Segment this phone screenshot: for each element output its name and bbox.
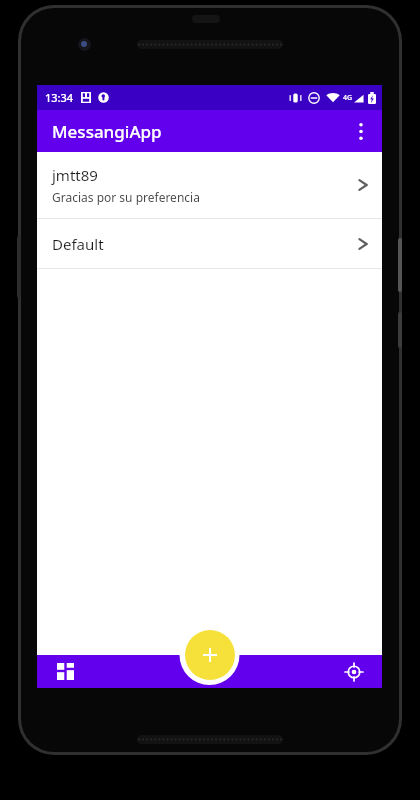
staticText: MessangiApp	[52, 120, 162, 143]
staticText: Gracias por su preferencia	[52, 189, 200, 205]
staticText: Default	[52, 234, 104, 254]
staticText: 4G	[343, 93, 353, 103]
button[interactable]: Default	[37, 219, 382, 268]
button[interactable]: jmtt89	[37, 152, 382, 218]
button[interactable]: My location	[334, 655, 374, 688]
button[interactable]: Dashboard	[45, 655, 85, 688]
button[interactable]: Add	[185, 630, 235, 680]
staticText: jmtt89	[52, 165, 98, 185]
staticText: 13:34	[45, 90, 74, 105]
button[interactable]: More options	[340, 110, 382, 152]
